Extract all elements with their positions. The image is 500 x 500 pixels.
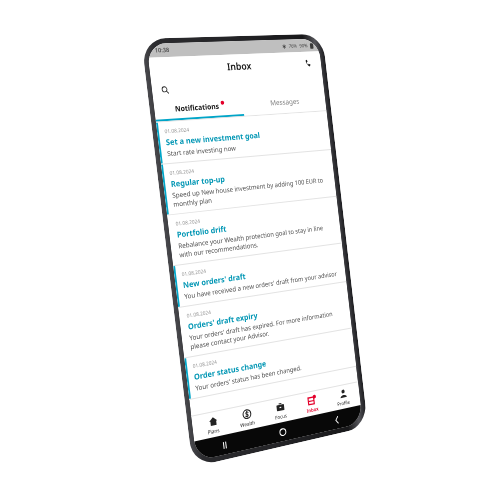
staticText: 01.08.2024 — [192, 358, 217, 369]
button[interactable]: Wealth — [230, 402, 263, 433]
staticText: Inbox — [306, 405, 319, 414]
button[interactable]: Plans — [196, 408, 229, 440]
button[interactable]: Messages — [242, 90, 326, 114]
button[interactable]: Inbox — [296, 388, 327, 418]
button[interactable]: Profile — [328, 382, 358, 411]
staticText: Order status change — [193, 357, 267, 382]
button[interactable]: Search — [158, 83, 172, 97]
staticText: 01.08.2024 — [181, 267, 207, 277]
button[interactable]: 01.08.2024 — [167, 197, 342, 266]
button[interactable]: Recents — [218, 438, 230, 452]
staticText: You have received a new orders' draft fr… — [184, 269, 338, 301]
staticText: Profile — [337, 398, 350, 407]
staticText: Your orders' status has been changed. — [195, 363, 303, 393]
button[interactable]: 01.08.2024 — [184, 328, 356, 400]
staticText: 76% — [288, 43, 297, 50]
staticText: Rebalance your Wealth protection goal to… — [178, 222, 335, 259]
staticText: Start rate investing now — [167, 144, 236, 158]
button[interactable]: 01.08.2024 — [173, 243, 346, 308]
button[interactable]: Back — [331, 413, 342, 426]
staticText: Orders' draft expiry — [187, 309, 259, 331]
button[interactable]: Focus — [264, 395, 295, 425]
staticText: Wealth — [240, 418, 255, 428]
staticText: Your orders' draft has expired. For more… — [189, 308, 345, 351]
staticText: New orders' draft — [182, 270, 246, 290]
staticText: 01.08.2024 — [164, 126, 190, 134]
staticText: Portfolio drift — [176, 223, 227, 240]
staticText: 01.08.2024 — [186, 308, 212, 319]
button[interactable]: Call — [301, 55, 315, 71]
button[interactable]: 01.08.2024 — [161, 150, 336, 216]
staticText: Regular top-up — [170, 173, 226, 189]
button[interactable]: Notifications — [153, 95, 244, 120]
button[interactable]: 01.08.2024 — [178, 282, 352, 358]
staticText: Focus — [274, 411, 288, 421]
staticText: Set a new investment goal — [165, 129, 261, 147]
button[interactable]: 01.08.2024 — [156, 111, 331, 165]
staticText: Speed up New house investment by adding … — [172, 175, 329, 209]
staticText: 10:38 — [154, 46, 170, 54]
staticText: 01.08.2024 — [169, 167, 195, 176]
staticText: Inbox — [226, 59, 252, 73]
staticText: 90% — [299, 42, 308, 49]
staticText: Messages — [270, 96, 300, 107]
staticText: Plans — [207, 426, 220, 436]
button[interactable]: Home — [277, 425, 288, 439]
staticText: 01.08.2024 — [175, 217, 201, 227]
staticText: Notifications — [174, 101, 220, 113]
